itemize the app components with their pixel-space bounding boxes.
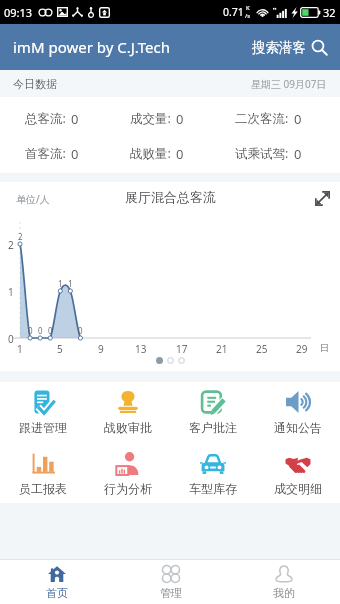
staticText: imM power by C.J.Tech xyxy=(13,37,171,57)
staticText: 17 xyxy=(176,342,188,356)
button[interactable]: Expand chart xyxy=(310,186,334,210)
staticText: 2 xyxy=(18,231,23,242)
staticText: 1 xyxy=(68,278,73,289)
staticText: 首页 xyxy=(46,586,68,600)
staticText: 0 xyxy=(176,110,184,126)
staticText: 今日数据 xyxy=(13,77,57,91)
staticText: 首客流: xyxy=(25,145,66,161)
staticText: 总客流: xyxy=(25,110,66,126)
button[interactable]: 首页 xyxy=(0,560,114,604)
button[interactable]: 跟进管理 xyxy=(0,382,85,442)
staticText: 搜索潜客 xyxy=(252,39,306,56)
staticText: 跟进管理 xyxy=(19,420,67,435)
staticText: 员工报表 xyxy=(19,481,67,496)
button[interactable]: 行为分析 xyxy=(85,442,170,503)
staticText: 成交明细 xyxy=(274,481,322,496)
staticText: 战败审批 xyxy=(104,420,152,435)
staticText: 二次客流: xyxy=(235,110,289,126)
staticText: 29 xyxy=(296,342,308,356)
button[interactable]: 战败审批 xyxy=(85,382,170,442)
staticText: 客户批注 xyxy=(189,420,237,435)
staticText: 5 xyxy=(57,342,63,356)
staticText: 0 xyxy=(71,145,79,161)
staticText: 9 xyxy=(98,342,104,356)
staticText: 13 xyxy=(135,342,147,356)
staticText: 0 xyxy=(71,110,79,126)
staticText: 成交量: xyxy=(130,110,171,126)
staticText: 0 xyxy=(294,110,302,126)
button[interactable]: 车型库存 xyxy=(170,442,255,503)
staticText: 行为分析 xyxy=(104,481,152,496)
staticText: 星期三 09月07日 xyxy=(251,77,327,91)
button[interactable]: 员工报表 xyxy=(0,442,85,503)
staticText: 32 xyxy=(323,5,336,20)
staticText: 单位/人 xyxy=(16,192,50,206)
staticText: 21 xyxy=(216,342,228,356)
staticText: 0 xyxy=(78,325,83,336)
button[interactable]: 管理 xyxy=(114,560,227,604)
staticText: 管理 xyxy=(160,586,182,600)
staticText: 1 xyxy=(17,342,23,356)
staticText: 通知公告 xyxy=(274,420,322,435)
button[interactable]: 我的 xyxy=(227,560,340,604)
staticText: K xyxy=(246,4,250,12)
staticText: 0 xyxy=(176,145,184,161)
staticText: 日 xyxy=(320,342,329,353)
staticText: 展厅混合总客流 xyxy=(125,189,216,205)
staticText: 0 xyxy=(294,145,302,161)
staticText: 2 xyxy=(8,238,14,252)
staticText: 0.71 xyxy=(223,5,244,19)
staticText: 09:13 xyxy=(4,5,33,20)
button[interactable]: 成交明细 xyxy=(255,442,340,503)
staticText: 我的 xyxy=(273,586,295,600)
staticText: 试乘试驾: xyxy=(235,145,289,161)
staticText: 0 xyxy=(38,325,43,336)
staticText: /s xyxy=(245,12,251,20)
button[interactable]: 客户批注 xyxy=(170,382,255,442)
staticText: 1 xyxy=(58,278,63,289)
staticText: 车型库存 xyxy=(189,481,237,496)
staticText: 0 xyxy=(28,325,33,336)
staticText: 25 xyxy=(256,342,268,356)
staticText: 0 xyxy=(8,332,14,346)
staticText: 0 xyxy=(48,325,53,336)
staticText: 1 xyxy=(8,285,14,299)
button[interactable]: 通知公告 xyxy=(255,382,340,442)
staticText: 战败量: xyxy=(130,145,171,161)
button[interactable]: 搜索潜客 xyxy=(244,31,340,64)
